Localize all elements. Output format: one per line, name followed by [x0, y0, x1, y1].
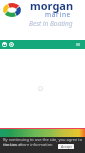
staticText: marine	[45, 10, 71, 19]
staticText: Accept	[61, 144, 72, 149]
button[interactable]: Phone	[9, 42, 14, 47]
staticText: cookies. more information	[3, 142, 53, 147]
staticText: morgan	[30, 0, 74, 13]
staticText: Best in Boating	[29, 19, 73, 28]
button[interactable]: Accept	[58, 144, 74, 149]
button[interactable]: Email	[2, 42, 7, 47]
staticText: By continuing to use the site, you agree…	[3, 137, 85, 147]
